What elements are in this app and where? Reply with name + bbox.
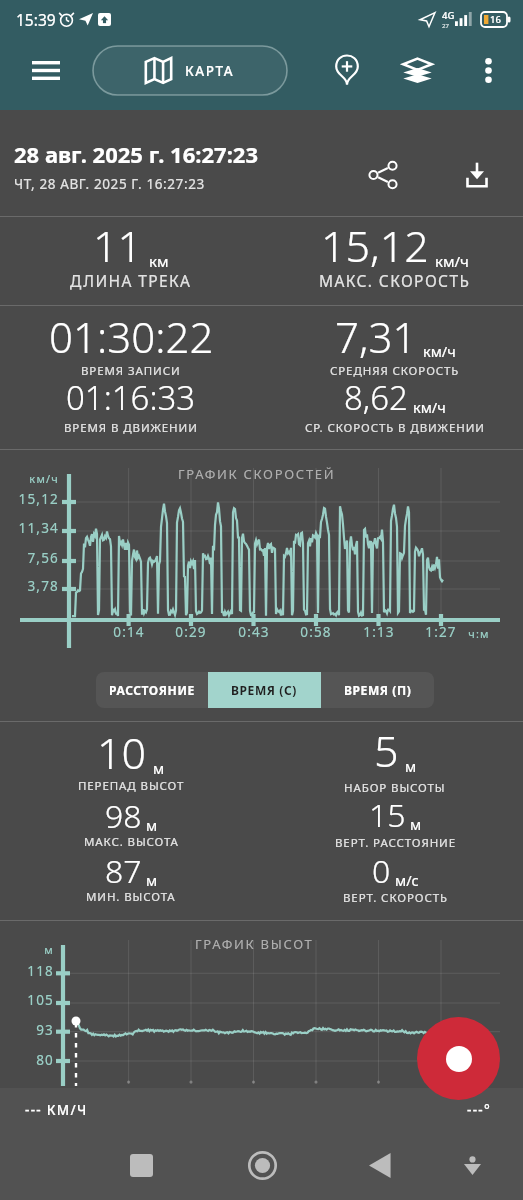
staticText: ч:м	[439, 626, 519, 641]
staticText: 80	[0, 1051, 54, 1069]
staticText: 118	[0, 962, 54, 980]
staticText: 5	[374, 721, 399, 780]
staticText: 16	[490, 13, 501, 26]
button[interactable]: Home	[236, 1139, 288, 1191]
button[interactable]: Layers	[394, 47, 440, 93]
staticText: ДЛИНА ТРЕКА	[70, 270, 192, 291]
button[interactable]: Menu	[22, 47, 69, 94]
staticText: СРЕДНЯЯ СКОРОСТЬ	[330, 363, 460, 379]
staticText: ЧТ, 28 АВГ. 2025 Г. 16:27:23	[14, 175, 205, 193]
staticText: м	[146, 870, 158, 890]
staticText: 15	[369, 793, 406, 837]
staticText: 11	[93, 216, 143, 275]
staticText: м	[153, 758, 165, 778]
staticText: 4G	[442, 9, 455, 22]
button[interactable]: РАССТОЯНИЕ	[96, 672, 208, 708]
staticText: м/с	[395, 870, 419, 890]
button[interactable]: Recent apps	[115, 1139, 167, 1191]
button[interactable]: Share	[357, 149, 409, 201]
staticText: МАКС. ВЫСОТА	[84, 834, 179, 850]
staticText: км	[149, 251, 169, 271]
staticText: ВЕРТ. РАССТОЯНИЕ	[335, 835, 456, 851]
staticText: 0:14	[89, 623, 169, 641]
staticText: 01:16:33	[66, 375, 196, 420]
staticText: 7,31	[335, 308, 417, 365]
button[interactable]: ВРЕМЯ (С)	[208, 672, 321, 708]
staticText: 1:13	[339, 623, 419, 641]
staticText: м	[405, 756, 417, 776]
staticText: ВРЕМЯ (С)	[231, 682, 298, 698]
staticText: СР. СКОРОСТЬ В ДВИЖЕНИИ	[305, 420, 485, 436]
staticText: км/ч	[0, 471, 59, 486]
staticText: 93	[0, 1021, 54, 1039]
button[interactable]: Hide keyboard	[446, 1139, 498, 1191]
staticText: ВРЕМЯ ЗАПИСИ	[81, 363, 181, 379]
staticText: м	[146, 815, 158, 835]
staticText: м	[410, 814, 422, 834]
staticText: ВРЕМЯ В ДВИЖЕНИИ	[64, 420, 198, 436]
button[interactable]: ВРЕМЯ (П)	[321, 672, 434, 708]
staticText: 15,12	[0, 490, 59, 508]
button[interactable]: Back	[354, 1139, 406, 1191]
staticText: 0:29	[151, 623, 231, 641]
button[interactable]: Download	[451, 149, 503, 201]
staticText: км/ч	[413, 397, 446, 417]
staticText: МИН. ВЫСОТА	[86, 889, 176, 905]
staticText: 15:39	[16, 9, 56, 30]
staticText: 11,34	[0, 519, 59, 537]
staticText: 27	[442, 22, 449, 30]
staticText: 0	[372, 849, 391, 893]
staticText: 105	[0, 991, 54, 1009]
staticText: ВРЕМЯ (П)	[344, 682, 412, 698]
staticText: 28 авг. 2025 г. 16:27:23	[14, 139, 258, 169]
button[interactable]: Record	[417, 1017, 500, 1100]
staticText: 3,78	[0, 577, 59, 595]
staticText: ПЕРЕПАД ВЫСОТ	[78, 778, 185, 794]
staticText: 15,12	[321, 216, 429, 275]
button[interactable]: Add marker	[324, 47, 370, 93]
staticText: ГРАФИК ВЫСОТ	[195, 935, 314, 953]
staticText: МАКС. СКОРОСТЬ	[319, 270, 471, 291]
staticText: --- КМ/Ч	[25, 1101, 88, 1119]
staticText: 1:27	[401, 623, 481, 641]
button[interactable]: КАРТА	[93, 46, 287, 95]
staticText: ---°	[467, 1101, 491, 1119]
staticText: ГРАФИК СКОРОСТЕЙ	[178, 465, 336, 483]
staticText: м	[0, 942, 54, 957]
staticText: 7,56	[0, 549, 59, 567]
staticText: 0:43	[214, 623, 294, 641]
staticText: 87	[105, 849, 142, 893]
staticText: КАРТА	[185, 62, 235, 80]
staticText: РАССТОЯНИЕ	[109, 682, 195, 698]
staticText: 0:58	[276, 623, 356, 641]
staticText: км/ч	[423, 341, 456, 361]
staticText: 98	[105, 794, 142, 838]
staticText: ВЕРТ. СКОРОСТЬ	[343, 890, 448, 906]
button[interactable]: More options	[465, 47, 511, 93]
staticText: 10	[97, 723, 147, 782]
staticText: 8,62	[344, 375, 408, 420]
staticText: НАБОР ВЫСОТЫ	[344, 780, 446, 796]
staticText: 01:30:22	[49, 308, 214, 365]
staticText: км/ч	[435, 251, 469, 271]
